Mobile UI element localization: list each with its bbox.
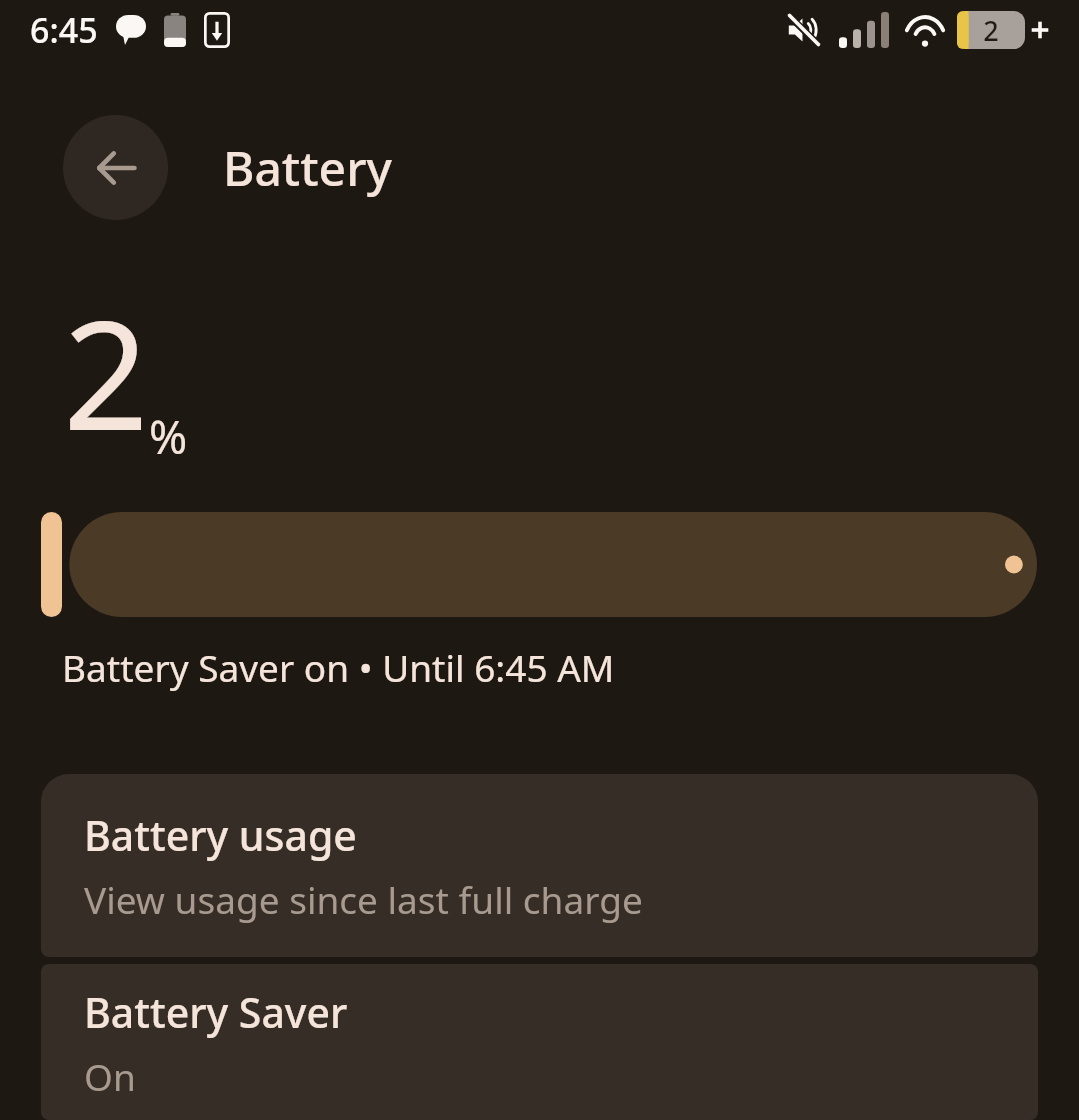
button[interactable] [0,500,1079,620]
staticText: Battery Saver [84,984,348,1040]
staticText: On [84,1051,136,1101]
staticText: Battery [223,135,392,200]
staticText: Battery Saver on • Until 6:45 AM [62,642,615,692]
staticText: View usage since last full charge [84,874,643,924]
staticText: Battery usage [84,807,357,863]
staticText: % [149,405,188,468]
staticText: 2 [983,12,999,49]
button[interactable]: Battery usage [41,774,1038,957]
button[interactable]: Back [63,115,168,220]
staticText: 2 [63,270,149,474]
staticText: 6:45 [30,7,98,53]
button[interactable]: Battery Saver [41,964,1038,1120]
